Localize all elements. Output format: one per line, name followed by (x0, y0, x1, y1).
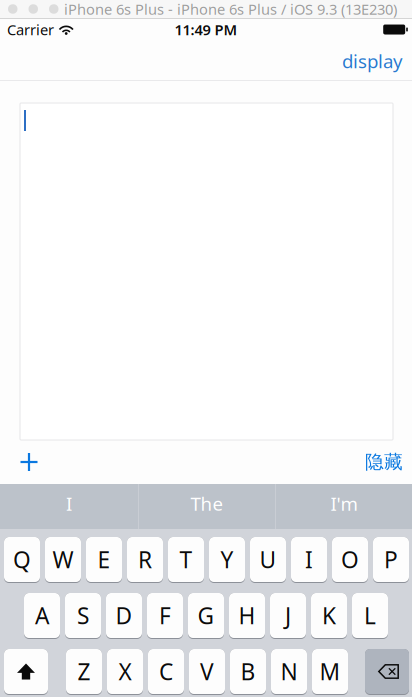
staticText: E (97, 544, 110, 574)
button[interactable]: G (188, 593, 224, 639)
button[interactable]: Q (4, 537, 40, 583)
button[interactable]: A (24, 593, 60, 639)
button[interactable]: V (189, 649, 225, 695)
button[interactable]: P (373, 537, 409, 583)
button[interactable]: I (291, 537, 327, 583)
button[interactable]: T (168, 537, 204, 583)
staticText: Q (13, 544, 31, 574)
button[interactable]: O (332, 537, 368, 583)
button[interactable]: U (250, 537, 286, 583)
staticText: T (179, 544, 192, 574)
staticText: R (138, 544, 152, 574)
button[interactable]: display (342, 42, 412, 80)
button[interactable]: D (106, 593, 142, 639)
button[interactable]: F (147, 593, 183, 639)
staticText: H (238, 600, 255, 630)
staticText: 隐藏 (365, 450, 403, 473)
button[interactable]: L (352, 593, 388, 639)
staticText: I'm (330, 491, 357, 516)
staticText: G (197, 600, 214, 630)
button[interactable]: Add (9, 442, 49, 482)
button[interactable]: 隐藏 (365, 442, 412, 482)
staticText: V (200, 656, 214, 686)
staticText: I (66, 491, 72, 516)
staticText: S (77, 600, 89, 630)
button[interactable]: K (311, 593, 347, 639)
staticText: K (322, 600, 336, 630)
button[interactable]: M (312, 649, 348, 695)
staticText: X (118, 656, 131, 686)
staticText: Carrier (7, 20, 54, 39)
button[interactable]: W (45, 537, 81, 583)
staticText: I (305, 544, 313, 574)
staticText: W (52, 544, 73, 574)
staticText: M (319, 656, 340, 686)
staticText: O (341, 544, 359, 574)
staticText: D (115, 600, 132, 630)
button[interactable]: H (229, 593, 265, 639)
button[interactable]: Shift (4, 649, 48, 695)
staticText: display (342, 49, 403, 73)
button[interactable]: C (148, 649, 184, 695)
staticText: Y (220, 544, 233, 574)
staticText: N (280, 656, 297, 686)
button[interactable]: The (139, 484, 275, 529)
button[interactable]: Y (209, 537, 245, 583)
staticText: L (364, 600, 376, 630)
staticText: iPhone 6s Plus - iPhone 6s Plus / iOS 9.… (64, 0, 397, 19)
button[interactable]: N (271, 649, 307, 695)
staticText: B (240, 656, 255, 686)
button[interactable]: E (86, 537, 122, 583)
button[interactable]: J (270, 593, 306, 639)
staticText: 11:49 PM (174, 20, 237, 39)
button[interactable]: Z (66, 649, 102, 695)
button[interactable]: R (127, 537, 163, 583)
staticText: A (35, 600, 49, 630)
staticText: P (384, 544, 398, 574)
staticText: The (190, 491, 223, 516)
staticText: U (259, 544, 276, 574)
button[interactable]: Delete (365, 649, 409, 695)
button[interactable]: I'm (276, 484, 412, 529)
button[interactable]: S (65, 593, 101, 639)
button[interactable]: I (0, 484, 138, 529)
staticText: J (285, 600, 291, 630)
button[interactable]: X (107, 649, 143, 695)
staticText: C (159, 656, 173, 686)
staticText: F (159, 600, 171, 630)
staticText: Z (77, 656, 90, 686)
button[interactable]: B (230, 649, 266, 695)
